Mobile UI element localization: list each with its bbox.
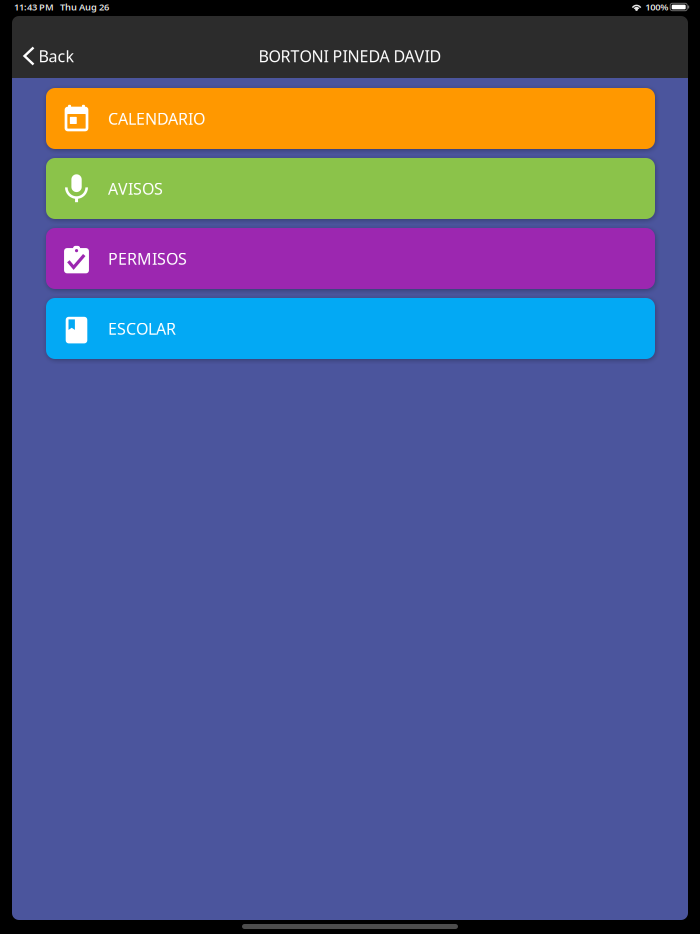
button[interactable]: Back <box>12 34 102 78</box>
staticText: Back <box>38 45 74 67</box>
staticText: CALENDARIO <box>108 108 205 129</box>
button[interactable]: PERMISOS <box>46 228 655 289</box>
staticText: AVISOS <box>108 178 163 199</box>
staticText: 11:43 PM <box>14 1 54 13</box>
staticText: ESCOLAR <box>108 318 176 339</box>
staticText: PERMISOS <box>108 248 187 269</box>
staticText: BORTONI PINEDA DAVID <box>258 45 441 67</box>
button[interactable]: ESCOLAR <box>46 298 655 359</box>
button[interactable]: AVISOS <box>46 158 655 219</box>
button[interactable]: CALENDARIO <box>46 88 655 149</box>
staticText: Thu Aug 26 <box>60 1 109 13</box>
staticText: 100% <box>645 1 668 13</box>
